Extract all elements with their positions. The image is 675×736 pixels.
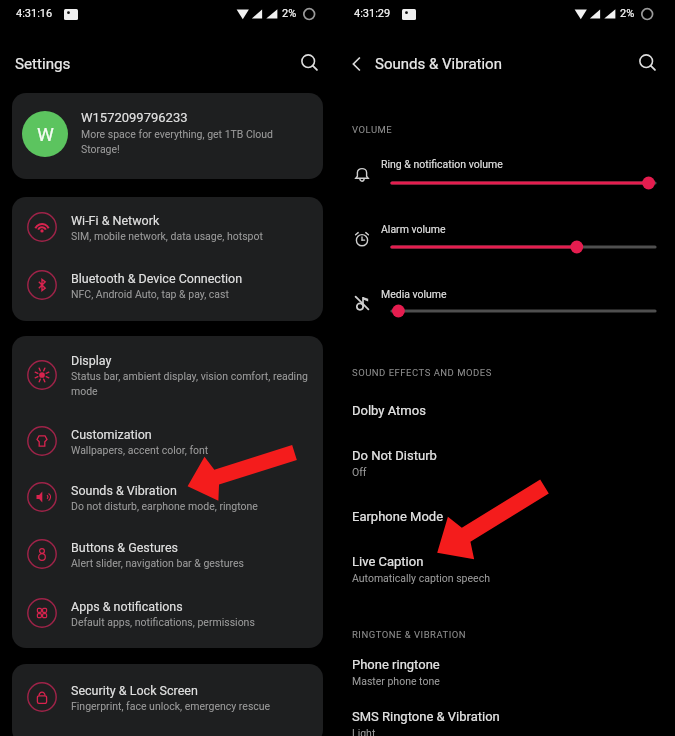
staticText: Security & Lock Screen	[71, 683, 198, 698]
button[interactable]: Earphone Mode	[338, 499, 675, 541]
button[interactable]: Alarm volume	[338, 217, 675, 263]
staticText: NFC, Android Auto, tap & pay, cast	[71, 288, 321, 300]
button[interactable]: Search	[631, 46, 663, 78]
button[interactable]: Ring & notification volume	[338, 152, 675, 198]
button[interactable]: Back	[341, 48, 373, 80]
staticText: Master phone tone	[352, 675, 440, 687]
button[interactable]: Security & Lock Screen	[12, 682, 323, 712]
staticText: 4:31:16	[16, 7, 53, 20]
button[interactable]: W	[12, 93, 323, 179]
staticText: Buttons & Gestures	[71, 540, 178, 555]
staticText: Alert slider, navigation bar & gestures	[71, 557, 321, 569]
staticText: Apps & notifications	[71, 599, 183, 614]
staticText: VOLUME	[352, 124, 393, 135]
staticText: Light	[352, 727, 376, 736]
staticText: Do not disturb, earphone mode, ringtone	[71, 500, 321, 512]
staticText: Wallpapers, accent color, font	[71, 444, 321, 456]
button[interactable]: Buttons & Gestures	[12, 539, 323, 569]
staticText: Dolby Atmos	[352, 403, 426, 418]
button[interactable]: Bluetooth & Device Connection	[12, 270, 323, 300]
staticText: Display	[71, 353, 112, 368]
button[interactable]: Customization	[12, 426, 323, 456]
staticText: SIM, mobile network, data usage, hotspot	[71, 230, 321, 242]
staticText: W1572099796233	[81, 110, 188, 125]
staticText: Ring & notification volume	[381, 158, 503, 170]
staticText: Phone ringtone	[352, 657, 440, 672]
staticText: Earphone Mode	[352, 509, 444, 524]
staticText: 2%	[282, 7, 297, 20]
staticText: Off	[352, 466, 367, 478]
staticText: Fingerprint, face unlock, emergency resc…	[71, 700, 321, 712]
staticText: Media volume	[381, 288, 447, 300]
staticText: Do Not Disturb	[352, 448, 437, 463]
button[interactable]: Live Caption	[338, 544, 675, 596]
staticText: Sounds & Vibration	[71, 483, 177, 498]
staticText: Bluetooth & Device Connection	[71, 271, 243, 286]
staticText: Customization	[71, 427, 152, 442]
button[interactable]: Sounds & Vibration	[12, 482, 323, 512]
staticText: 4:31:29	[354, 7, 391, 20]
staticText: W	[37, 123, 54, 145]
button[interactable]: Display	[12, 353, 323, 397]
staticText: RINGTONE & VIBRATION	[352, 629, 467, 640]
staticText: Automatically caption speech	[352, 572, 490, 584]
staticText: Live Caption	[352, 554, 424, 569]
button[interactable]: Phone ringtone	[338, 647, 675, 699]
staticText: 2%	[620, 7, 635, 20]
staticText: Settings	[15, 55, 71, 73]
staticText: SOUND EFFECTS AND MODES	[352, 367, 492, 378]
button[interactable]: Wi-Fi & Network	[12, 212, 323, 242]
button[interactable]: Search	[293, 46, 325, 78]
staticText: Wi-Fi & Network	[71, 213, 160, 228]
staticText: Status bar, ambient display, vision comf…	[71, 370, 323, 397]
button[interactable]: Media volume	[338, 282, 675, 328]
button[interactable]: SMS Ringtone & Vibration	[338, 699, 675, 736]
staticText: Default apps, notifications, permissions	[71, 616, 321, 628]
staticText: SMS Ringtone & Vibration	[352, 709, 500, 724]
staticText: Sounds & Vibration	[375, 55, 502, 73]
button[interactable]: Dolby Atmos	[338, 393, 675, 435]
staticText: More space for everything, get 1TB Cloud…	[81, 128, 274, 155]
staticText: Alarm volume	[381, 223, 446, 235]
button[interactable]: Apps & notifications	[12, 598, 323, 628]
button[interactable]: Do Not Disturb	[338, 438, 675, 490]
